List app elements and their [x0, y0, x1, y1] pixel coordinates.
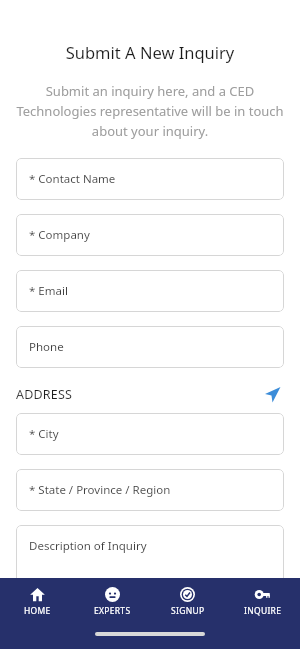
button[interactable]: Use current location — [260, 382, 284, 406]
staticText: * Contact Name — [29, 171, 116, 187]
staticText: Submit A New Inquiry — [16, 41, 284, 63]
button[interactable]: * City — [16, 413, 284, 455]
staticText: INQUIRE — [244, 605, 282, 617]
button[interactable]: HOME — [0, 585, 75, 619]
staticText: * Company — [29, 227, 90, 243]
button[interactable]: Description of Inquiry — [16, 525, 284, 615]
staticText: SIGNUP — [171, 605, 205, 617]
staticText: * City — [29, 426, 59, 442]
staticText: HOME — [24, 605, 51, 617]
button[interactable]: Phone — [16, 326, 284, 368]
button[interactable]: * State / Province / Region — [16, 469, 284, 511]
staticText: EXPERTS — [94, 605, 131, 617]
staticText: Description of Inquiry — [29, 538, 147, 554]
staticText: * Email — [29, 283, 68, 299]
staticText: Phone — [29, 339, 64, 355]
staticText: ADDRESS — [16, 386, 73, 403]
button[interactable]: * Company — [16, 214, 284, 256]
staticText: * State / Province / Region — [29, 482, 171, 498]
button[interactable]: EXPERTS — [75, 585, 150, 619]
staticText: Submit an inquiry here, and a CED Techno… — [16, 82, 284, 140]
button[interactable]: INQUIRE — [225, 585, 300, 619]
button[interactable]: * Email — [16, 270, 284, 312]
button[interactable]: SIGNUP — [150, 585, 225, 619]
button[interactable]: * Contact Name — [16, 158, 284, 200]
